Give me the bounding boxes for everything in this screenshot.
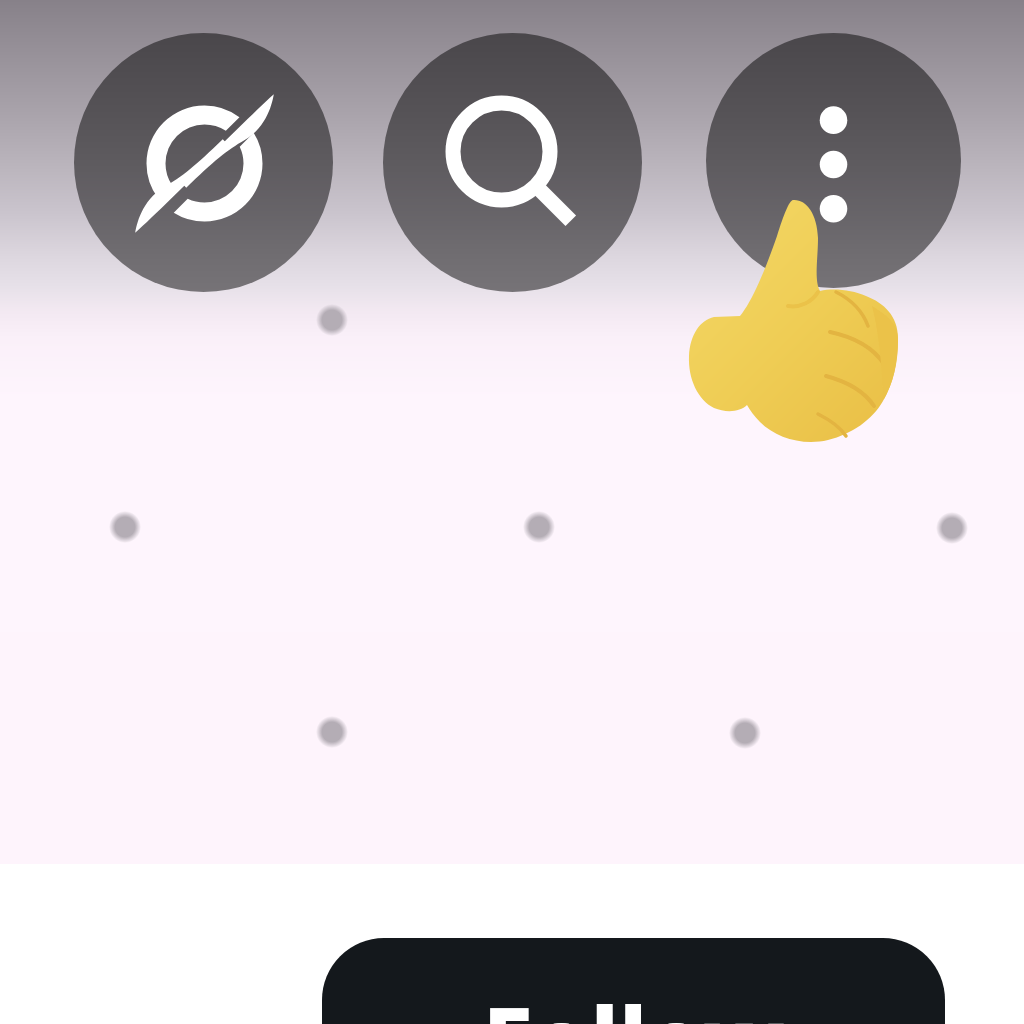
button[interactable]: More options: [706, 33, 961, 288]
staticText: Follow: [482, 977, 785, 1024]
button[interactable]: Follow: [322, 938, 945, 1024]
button[interactable]: Explore: [74, 33, 333, 292]
button[interactable]: Search: [383, 33, 642, 292]
